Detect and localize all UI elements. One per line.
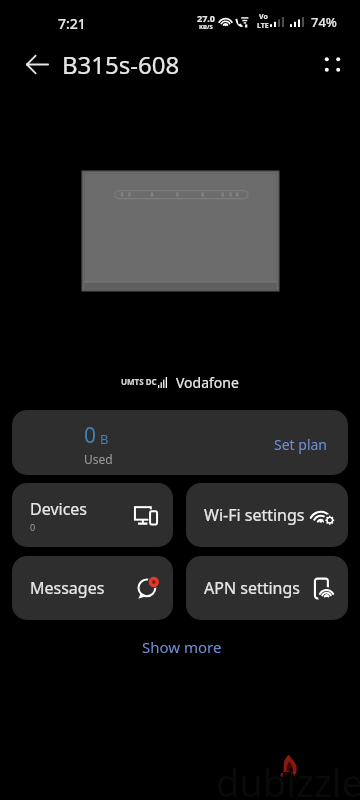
staticText: Vodafone xyxy=(176,373,239,392)
button[interactable]: Devices xyxy=(12,483,173,547)
button[interactable]: Messages xyxy=(12,556,173,620)
other: Devices xyxy=(134,506,158,525)
other: Messages xyxy=(137,578,158,599)
button[interactable]: Show more xyxy=(124,629,236,659)
staticText: 7:21 xyxy=(58,14,86,33)
staticText: KB/S xyxy=(199,23,213,31)
other: APN settings xyxy=(314,578,333,599)
staticText: Set plan xyxy=(274,435,328,454)
staticText: Messages xyxy=(30,577,105,599)
staticText: 74% xyxy=(311,13,337,31)
staticText: Show more xyxy=(142,637,222,657)
button[interactable]: APN settings xyxy=(186,556,348,620)
staticText: APN settings xyxy=(204,577,300,599)
staticText: Vo xyxy=(259,12,268,22)
button[interactable]: Set plan xyxy=(254,423,348,462)
button[interactable]: 0 xyxy=(12,410,348,475)
staticText: B xyxy=(100,430,109,448)
button[interactable]: More options xyxy=(312,44,352,84)
other: Wi-Fi settings xyxy=(310,507,333,524)
button[interactable]: Back xyxy=(17,44,58,85)
staticText: dubizzle xyxy=(216,756,360,800)
staticText: LTE xyxy=(257,21,269,31)
staticText: 0 xyxy=(84,421,97,450)
button[interactable]: Wi-Fi settings xyxy=(186,483,348,547)
staticText: 0 xyxy=(30,521,36,533)
staticText: B315s-608 xyxy=(62,48,180,81)
staticText: UMTS DC xyxy=(121,376,157,387)
staticText: Used xyxy=(84,451,113,467)
staticText: Wi-Fi settings xyxy=(204,504,305,526)
staticText: Devices xyxy=(30,498,88,520)
staticText: 27.0 xyxy=(197,12,215,24)
